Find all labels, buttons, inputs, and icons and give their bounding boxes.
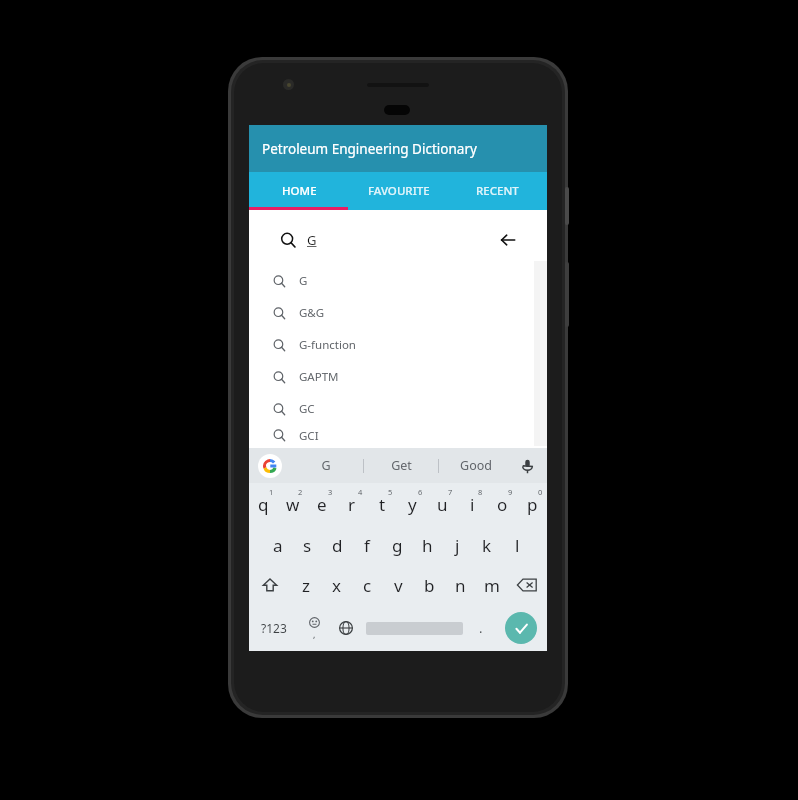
- button[interactable]: x: [321, 565, 352, 605]
- button[interactable]: Good: [439, 448, 513, 483]
- staticText: c: [363, 574, 372, 597]
- staticText: HOME: [282, 183, 317, 199]
- button[interactable]: v: [383, 565, 414, 605]
- button[interactable]: G: [289, 448, 363, 483]
- staticText: d: [332, 534, 343, 557]
- button[interactable]: RECENT: [448, 172, 547, 210]
- staticText: k: [482, 534, 492, 557]
- button[interactable]: Backspace: [507, 565, 547, 605]
- button[interactable]: h: [412, 525, 442, 565]
- button[interactable]: t: [367, 483, 397, 525]
- staticText: 8: [478, 487, 483, 497]
- staticText: ,: [313, 628, 316, 640]
- staticText: l: [515, 534, 520, 557]
- staticText: 6: [418, 487, 423, 497]
- button[interactable]: k: [472, 525, 502, 565]
- staticText: u: [437, 493, 448, 516]
- staticText: 2: [298, 487, 303, 497]
- button[interactable]: u: [427, 483, 457, 525]
- staticText: w: [286, 493, 300, 516]
- button[interactable]: f: [352, 525, 382, 565]
- staticText: 7: [448, 487, 453, 497]
- staticText: v: [394, 574, 403, 597]
- staticText: a: [273, 534, 283, 557]
- staticText: x: [332, 574, 341, 597]
- staticText: q: [258, 493, 269, 516]
- staticText: G: [299, 273, 308, 289]
- staticText: 5: [388, 487, 393, 497]
- staticText: h: [422, 534, 433, 557]
- button[interactable]: Emoji: [298, 605, 330, 651]
- staticText: Good: [460, 457, 492, 474]
- button[interactable]: l: [502, 525, 532, 565]
- staticText: r: [348, 493, 356, 516]
- button[interactable]: z: [290, 565, 321, 605]
- button[interactable]: b: [414, 565, 445, 605]
- button[interactable]: a: [263, 525, 292, 565]
- button[interactable]: i: [457, 483, 487, 525]
- button[interactable]: m: [476, 565, 507, 605]
- staticText: z: [302, 574, 310, 597]
- button[interactable]: GCI: [264, 425, 534, 446]
- staticText: GCI: [299, 428, 319, 444]
- staticText: p: [527, 493, 538, 516]
- staticText: FAVOURITE: [368, 183, 430, 199]
- button[interactable]: q: [249, 483, 278, 525]
- button[interactable]: Space: [362, 605, 466, 651]
- staticText: n: [455, 574, 466, 597]
- staticText: G: [321, 457, 331, 474]
- button[interactable]: n: [445, 565, 476, 605]
- staticText: G: [307, 231, 317, 249]
- button[interactable]: o: [487, 483, 517, 525]
- staticText: GC: [299, 401, 315, 417]
- button[interactable]: GAPTM: [264, 361, 534, 393]
- button[interactable]: Google: [258, 454, 282, 478]
- button[interactable]: ?123: [249, 605, 298, 651]
- staticText: Get: [391, 457, 412, 474]
- button[interactable]: s: [292, 525, 322, 565]
- staticText: G&G: [299, 305, 325, 321]
- staticText: j: [455, 534, 460, 557]
- button[interactable]: w: [278, 483, 307, 525]
- staticText: .: [479, 619, 483, 637]
- staticText: 9: [508, 487, 513, 497]
- staticText: i: [470, 493, 475, 516]
- button[interactable]: Change keyboard language: [330, 605, 362, 651]
- button[interactable]: G-function: [264, 329, 534, 361]
- staticText: RECENT: [476, 183, 519, 199]
- button[interactable]: y: [397, 483, 427, 525]
- button[interactable]: g: [382, 525, 412, 565]
- button[interactable]: HOME: [249, 172, 349, 210]
- button[interactable]: G&G: [264, 297, 534, 329]
- staticText: 3: [328, 487, 333, 497]
- staticText: 0: [538, 487, 543, 497]
- button[interactable]: .: [466, 605, 495, 651]
- staticText: 4: [358, 487, 363, 497]
- button[interactable]: Search: [264, 219, 532, 261]
- button[interactable]: G: [264, 265, 534, 297]
- staticText: g: [392, 534, 403, 557]
- button[interactable]: Voice input: [515, 454, 539, 478]
- staticText: b: [424, 574, 435, 597]
- button[interactable]: r: [337, 483, 367, 525]
- staticText: Petroleum Engineering Dictionary: [262, 140, 477, 158]
- button[interactable]: Get: [364, 448, 438, 483]
- button[interactable]: c: [352, 565, 383, 605]
- button[interactable]: p: [517, 483, 547, 525]
- staticText: GAPTM: [299, 369, 339, 385]
- button[interactable]: j: [442, 525, 472, 565]
- button[interactable]: Back: [494, 226, 522, 254]
- button[interactable]: FAVOURITE: [349, 172, 448, 210]
- staticText: s: [303, 534, 312, 557]
- button[interactable]: Done: [505, 612, 537, 644]
- staticText: o: [497, 493, 508, 516]
- staticText: 1: [269, 487, 274, 497]
- staticText: m: [484, 574, 500, 597]
- staticText: e: [317, 493, 327, 516]
- button[interactable]: d: [322, 525, 352, 565]
- button[interactable]: GC: [264, 393, 534, 425]
- staticText: t: [379, 493, 386, 516]
- button[interactable]: e: [307, 483, 337, 525]
- staticText: ?123: [261, 620, 287, 636]
- button[interactable]: Shift: [249, 565, 290, 605]
